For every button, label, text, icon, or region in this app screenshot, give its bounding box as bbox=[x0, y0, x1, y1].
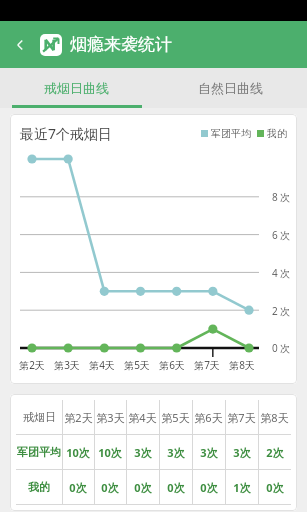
staticText: 3次 bbox=[233, 445, 251, 460]
staticText: 第8天 bbox=[229, 358, 255, 372]
staticText: 第7天 bbox=[194, 358, 220, 372]
staticText: 4 次 bbox=[272, 266, 291, 280]
staticText: 第8天 bbox=[260, 410, 289, 425]
staticText: 0次 bbox=[101, 480, 119, 495]
staticText: 6 次 bbox=[272, 228, 291, 242]
staticText: 第2天 bbox=[64, 410, 93, 425]
staticText: 10次 bbox=[66, 445, 90, 460]
staticText: 第3天 bbox=[96, 410, 125, 425]
staticText: 第7天 bbox=[227, 410, 256, 425]
staticText: 第5天 bbox=[124, 358, 150, 372]
button[interactable]: 戒烟日 bbox=[16, 400, 291, 434]
staticText: 我的 bbox=[267, 127, 287, 140]
staticText: 1次 bbox=[233, 480, 251, 495]
staticText: 第4天 bbox=[89, 358, 115, 372]
staticText: 0次 bbox=[69, 480, 87, 495]
staticText: 最近7个戒烟日 bbox=[20, 124, 113, 143]
button[interactable]: Back bbox=[0, 21, 40, 68]
staticText: 第4天 bbox=[128, 410, 157, 425]
staticText: 我的 bbox=[28, 480, 50, 494]
staticText: 第5天 bbox=[161, 410, 190, 425]
button[interactable]: 军团平均 bbox=[16, 435, 291, 469]
staticText: 戒烟日 bbox=[23, 410, 56, 424]
staticText: 0次 bbox=[200, 480, 218, 495]
staticText: 10次 bbox=[98, 445, 122, 460]
staticText: 军团平均 bbox=[211, 127, 251, 140]
staticText: 0次 bbox=[266, 480, 284, 495]
staticText: 戒烟日曲线 bbox=[44, 80, 109, 96]
staticText: 第6天 bbox=[159, 358, 185, 372]
staticText: 第2天 bbox=[19, 358, 45, 372]
staticText: 3次 bbox=[167, 445, 185, 460]
staticText: 2 次 bbox=[272, 304, 291, 318]
staticText: 第6天 bbox=[194, 410, 223, 425]
staticText: 烟瘾来袭统计 bbox=[70, 34, 172, 55]
staticText: 0次 bbox=[167, 480, 185, 495]
button[interactable]: 自然日曲线 bbox=[153, 68, 307, 108]
staticText: 3次 bbox=[134, 445, 152, 460]
button[interactable]: 我的 bbox=[16, 470, 291, 504]
staticText: 自然日曲线 bbox=[198, 80, 263, 96]
staticText: 0 次 bbox=[272, 341, 291, 355]
staticText: 军团平均 bbox=[17, 445, 61, 459]
button[interactable]: 戒烟日曲线 bbox=[0, 68, 153, 108]
staticText: 0次 bbox=[134, 480, 152, 495]
staticText: 2次 bbox=[266, 445, 284, 460]
staticText: 第3天 bbox=[54, 358, 80, 372]
staticText: 3次 bbox=[200, 445, 218, 460]
staticText: 8 次 bbox=[272, 190, 291, 204]
